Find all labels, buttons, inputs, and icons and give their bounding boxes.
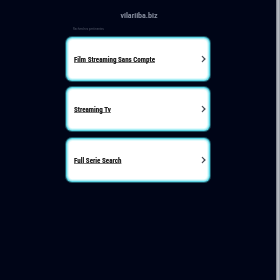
button[interactable]: Full Serie Search — [69, 141, 207, 179]
button[interactable]: Streaming Tv — [69, 90, 207, 128]
staticText: vilariiba.biz — [120, 11, 158, 20]
staticText: Full Serie Search — [74, 157, 122, 165]
staticText: Streaming Tv — [74, 106, 111, 114]
other: Open — [202, 56, 205, 62]
staticText: Film Streaming Sans Compte — [74, 56, 156, 64]
other: Open — [202, 106, 205, 112]
staticText: Recherches pertinentes — [73, 27, 104, 31]
other: Open — [202, 157, 205, 163]
staticText: Full Serie Search — [74, 157, 122, 165]
staticText: Streaming Tv — [74, 106, 111, 114]
button[interactable]: Film Streaming Sans Compte — [69, 40, 207, 78]
staticText: Film Streaming Sans Compte — [74, 56, 156, 64]
